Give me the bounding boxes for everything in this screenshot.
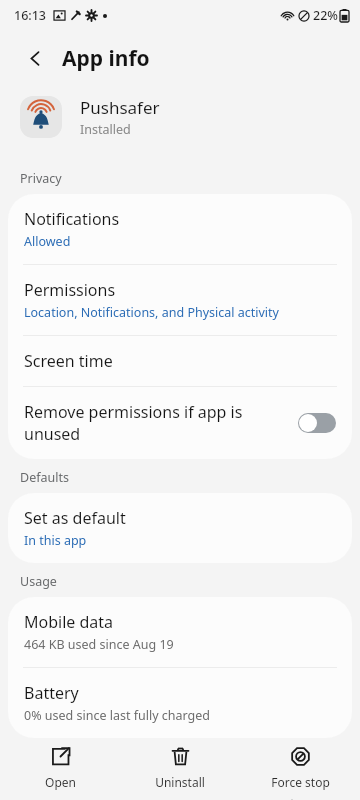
staticText: Open <box>45 774 76 790</box>
staticText: Installed <box>80 121 131 138</box>
button[interactable]: Pushsafer <box>0 86 360 148</box>
staticText: Pushsafer <box>80 96 160 119</box>
staticText: In this app <box>24 532 87 549</box>
staticText: Force stop <box>271 774 330 790</box>
staticText: 0% used since last fully charged <box>24 707 211 724</box>
staticText: App info <box>62 44 150 73</box>
staticText: 16:13 <box>14 7 47 24</box>
staticText: Privacy <box>20 170 62 187</box>
staticText: Screen time <box>24 350 113 372</box>
button[interactable]: Notifications <box>8 194 352 264</box>
staticText: Location, Notifications, and Physical ac… <box>24 304 279 321</box>
button[interactable]: Set as default <box>8 493 352 563</box>
staticText: Allowed <box>24 233 71 250</box>
staticText: Usage <box>20 573 57 590</box>
staticText: Set as default <box>24 507 126 529</box>
staticText: Notifications <box>24 208 120 230</box>
staticText: Battery <box>24 682 79 704</box>
button[interactable]: Back <box>18 41 52 75</box>
button[interactable]: Open <box>0 738 120 800</box>
other: Remove permissions toggle <box>298 413 336 433</box>
button[interactable]: Permissions <box>8 265 352 335</box>
staticText: Defaults <box>20 469 69 486</box>
button[interactable]: Screen time <box>8 336 352 386</box>
staticText: 464 KB used since Aug 19 <box>24 636 174 653</box>
button[interactable]: Remove permissions if app is unused <box>8 387 352 459</box>
button[interactable]: Uninstall <box>120 738 240 800</box>
button[interactable]: Mobile data <box>8 597 352 667</box>
staticText: Mobile data <box>24 611 114 633</box>
staticText: Remove permissions if app is unused <box>24 401 286 445</box>
button[interactable]: Force stop <box>240 738 360 800</box>
staticText: 22% <box>313 7 338 24</box>
staticText: Uninstall <box>155 774 205 790</box>
staticText: Permissions <box>24 279 116 301</box>
button[interactable]: Battery <box>8 668 352 738</box>
